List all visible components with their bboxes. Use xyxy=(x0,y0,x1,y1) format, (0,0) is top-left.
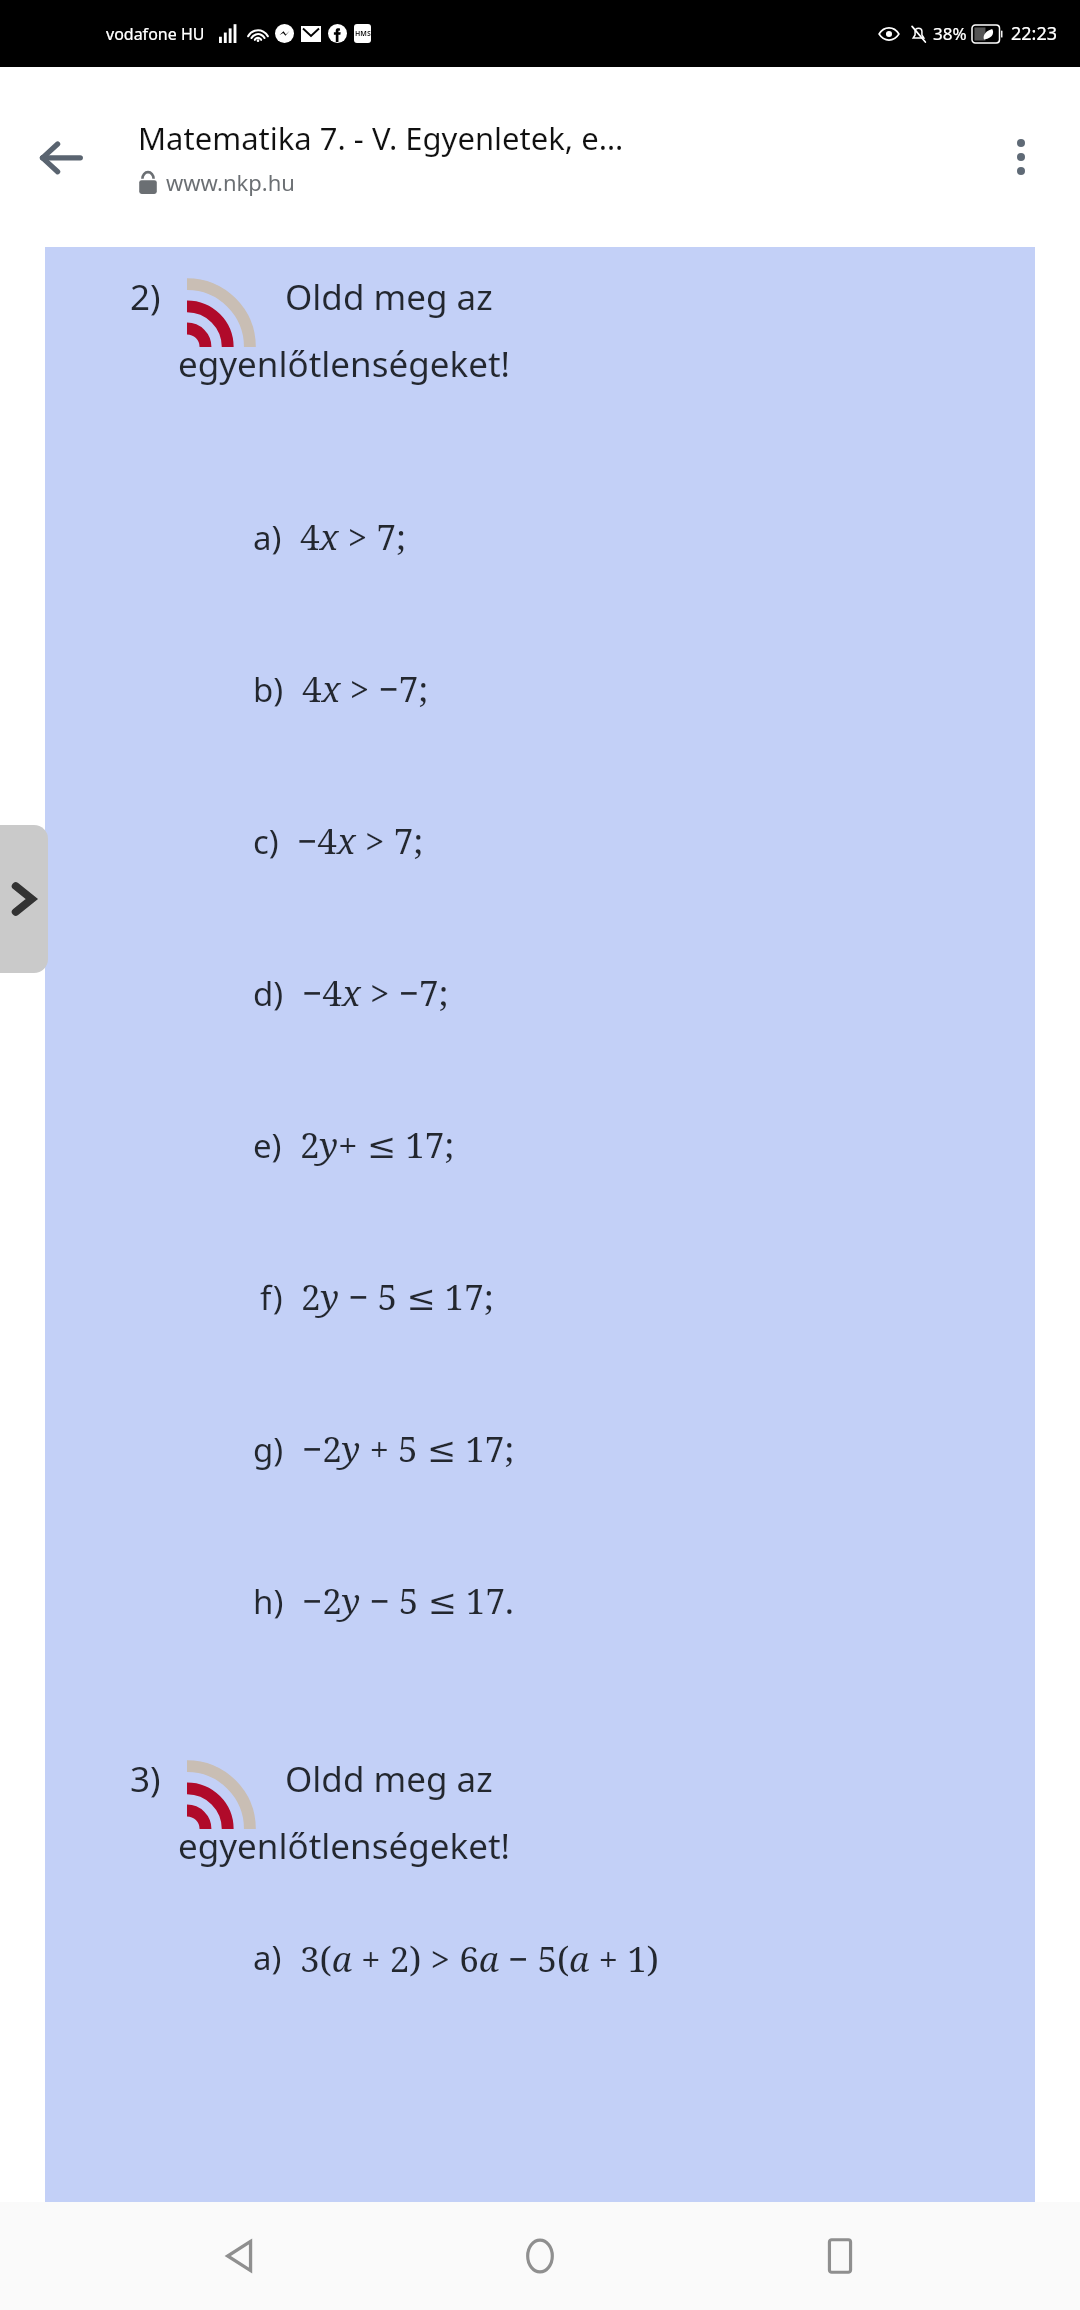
staticText: a) xyxy=(253,1935,282,1980)
staticText: −2y − 5 ≤ 17. xyxy=(302,1577,514,1625)
staticText: 3(a + 2) > 6a − 5(a + 1) xyxy=(300,1935,659,1983)
button[interactable]: Matematika 7. - V. Egyenletek, e… xyxy=(138,117,950,197)
staticText: −4x > 7; xyxy=(297,817,424,865)
staticText: b) xyxy=(253,667,284,712)
button[interactable]: Back xyxy=(180,2202,300,2310)
staticText: −2y + 5 ≤ 17; xyxy=(302,1425,515,1473)
staticText: Oldd meg az xyxy=(285,1755,493,1803)
staticText: www.nkp.hu xyxy=(166,167,295,197)
staticText: f) xyxy=(260,1275,283,1320)
staticText: egyenlőtlenségeket! xyxy=(178,340,510,388)
staticText: 2y − 5 ≤ 17; xyxy=(301,1273,494,1321)
button[interactable]: Open panel xyxy=(0,825,48,973)
staticText: 2) xyxy=(130,273,161,321)
button[interactable]: Home xyxy=(480,2202,600,2310)
staticText: 4x > 7; xyxy=(300,513,407,561)
staticText: a) xyxy=(253,515,282,560)
staticText: egyenlőtlenségeket! xyxy=(178,1822,510,1870)
staticText: 4x > −7; xyxy=(302,665,429,713)
staticText: d) xyxy=(253,971,284,1016)
staticText: g) xyxy=(253,1427,284,1472)
staticText: 38% xyxy=(933,22,967,45)
staticText: h) xyxy=(253,1579,284,1624)
button[interactable]: More options xyxy=(984,120,1058,194)
staticText: vodafone HU xyxy=(106,23,205,45)
staticText: Oldd meg az xyxy=(285,273,493,321)
staticText: 3) xyxy=(130,1755,161,1803)
staticText: HMS xyxy=(355,29,371,39)
staticText: Matematika 7. - V. Egyenletek, e… xyxy=(138,117,624,159)
staticText: 22:23 xyxy=(1011,21,1058,46)
button[interactable]: Back xyxy=(22,118,100,196)
staticText: −4x > −7; xyxy=(302,969,449,1017)
staticText: e) xyxy=(253,1123,282,1168)
button[interactable]: Recent apps xyxy=(780,2202,900,2310)
staticText: 2y+ ≤ 17; xyxy=(300,1121,455,1169)
staticText: c) xyxy=(253,819,279,864)
